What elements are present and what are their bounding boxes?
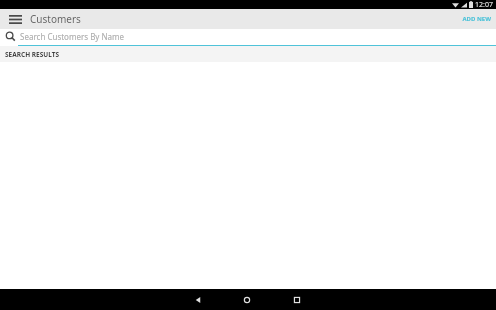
staticText: SEARCH RESULTS [5,50,60,59]
button[interactable]: Search [0,29,496,46]
button[interactable]: ADD NEW [459,11,494,27]
button[interactable]: Recent apps [287,290,307,310]
staticText: 12:07 [475,0,493,9]
button[interactable]: Back [188,290,208,310]
staticText: Customers [30,12,81,26]
button[interactable]: Open navigation drawer [5,9,25,29]
button[interactable]: Home [237,290,257,310]
staticText: ADD NEW [462,15,491,23]
other: Search [4,30,17,43]
staticText: Search Customers By Name [20,31,125,42]
